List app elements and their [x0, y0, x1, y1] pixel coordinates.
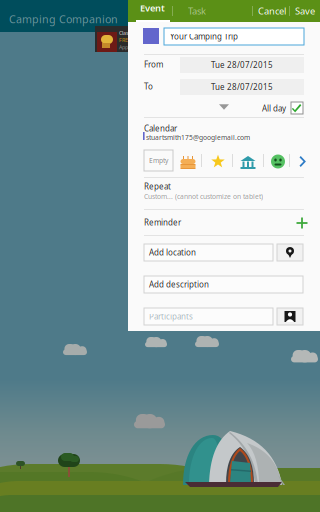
- staticText: Save: [295, 5, 315, 17]
- staticText: Camping Companion: [9, 12, 118, 26]
- button[interactable]: Pick participants: [277, 308, 303, 325]
- button[interactable]: Tue 28/07/2015: [180, 79, 304, 95]
- staticText: All day: [262, 103, 286, 114]
- staticText: Tue 28/07/2015: [211, 82, 273, 92]
- staticText: To: [144, 81, 153, 92]
- staticText: Add location: [149, 247, 196, 258]
- staticText: FREE: [119, 36, 131, 44]
- staticText: stuartsmith175@googlemail.com: [146, 133, 250, 142]
- button[interactable]: Show more date options: [211, 100, 237, 114]
- button[interactable]: Favourite sticker: [209, 154, 227, 169]
- staticText: Your Camping Trip: [170, 31, 238, 42]
- staticText: Add description: [149, 279, 209, 290]
- staticText: Tue 28/07/2015: [211, 60, 273, 70]
- staticText: Participants: [149, 311, 193, 322]
- button[interactable]: Add location: [144, 244, 273, 261]
- staticText: Cancel: [258, 5, 286, 17]
- staticText: Empty: [149, 156, 168, 165]
- staticText: Task: [188, 5, 206, 17]
- staticText: From: [144, 59, 163, 70]
- button[interactable]: Save: [292, 0, 318, 22]
- button[interactable]: Cancel: [256, 0, 288, 22]
- staticText: Custom... (cannot customize on tablet): [144, 192, 263, 201]
- button[interactable]: Task: [181, 0, 213, 22]
- button[interactable]: Pick location on map: [277, 244, 303, 261]
- button[interactable]: Tue 28/07/2015: [180, 57, 304, 73]
- staticText: Clash: [119, 29, 132, 36]
- button[interactable]: More stickers: [296, 154, 310, 169]
- staticText: Repeat: [144, 181, 171, 192]
- staticText: App: [119, 43, 128, 51]
- staticText: Reminder: [144, 217, 181, 228]
- staticText: Event: [140, 2, 165, 14]
- button[interactable]: Add reminder: [293, 214, 311, 232]
- staticText: Calendar: [144, 123, 177, 134]
- button[interactable]: Your Camping Trip: [164, 28, 304, 45]
- button[interactable]: Participants: [144, 308, 273, 325]
- button[interactable]: Add description: [144, 276, 303, 293]
- button[interactable]: All day: [291, 102, 303, 114]
- button[interactable]: Mood sticker: [270, 154, 286, 169]
- button[interactable]: Event: [136, 0, 170, 22]
- button[interactable]: Birthday sticker: [179, 155, 197, 170]
- button[interactable]: Empty: [144, 150, 173, 171]
- button[interactable]: Place sticker: [239, 155, 257, 170]
